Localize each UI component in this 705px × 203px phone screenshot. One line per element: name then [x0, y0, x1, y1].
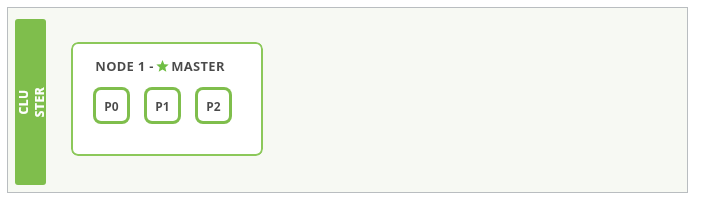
button[interactable]: P1 — [147, 90, 178, 121]
button[interactable]: NODE 1 - — [71, 42, 263, 156]
button[interactable]: P0 — [96, 90, 127, 121]
staticText: CLUSTER — [15, 86, 46, 117]
staticText: P2 — [206, 98, 221, 114]
staticText: MASTER — [171, 57, 225, 75]
staticText: P1 — [155, 98, 170, 114]
staticText: P0 — [104, 98, 119, 114]
other: Master node — [156, 60, 169, 73]
button[interactable]: P2 — [198, 90, 229, 121]
button[interactable]: CLUSTER — [15, 19, 46, 185]
staticText: NODE 1 - — [93, 57, 156, 75]
